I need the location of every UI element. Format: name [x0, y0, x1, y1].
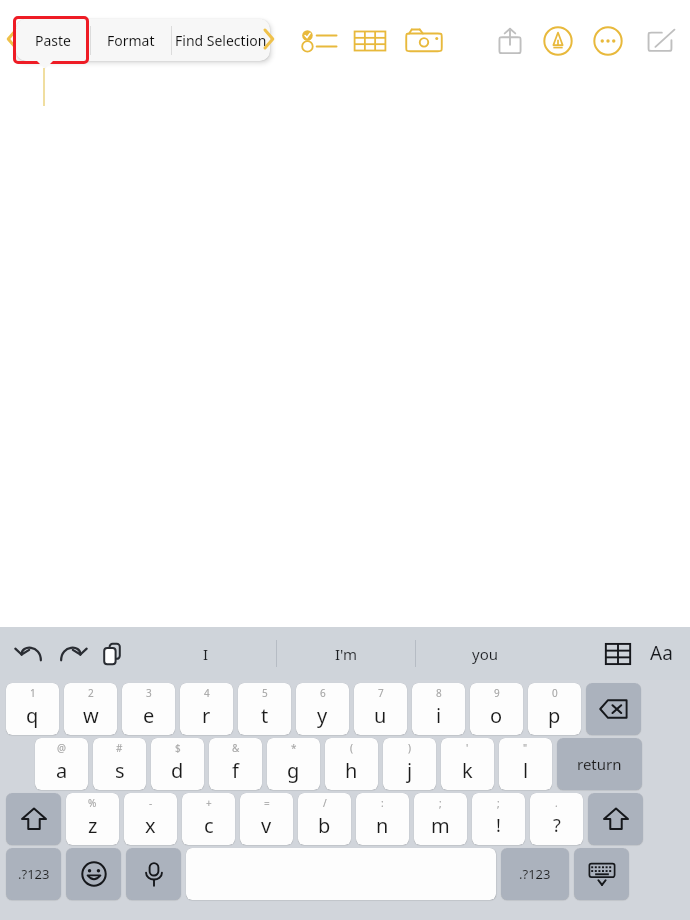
staticText: ;: [497, 796, 500, 810]
staticText: d: [171, 757, 184, 784]
staticText: (: [350, 741, 353, 755]
button[interactable]: ): [383, 738, 436, 790]
button[interactable]: Redo: [56, 640, 86, 668]
button[interactable]: .?123: [501, 848, 569, 900]
button[interactable]: return: [557, 738, 642, 790]
button[interactable]: you: [416, 635, 554, 673]
button[interactable]: 2: [64, 683, 117, 735]
staticText: v: [261, 812, 272, 839]
button[interactable]: Paste: [16, 19, 90, 61]
staticText: o: [490, 702, 503, 729]
button[interactable]: 1: [6, 683, 59, 735]
button[interactable]: 9: [470, 683, 523, 735]
button[interactable]: @: [35, 738, 88, 790]
button[interactable]: /: [298, 793, 351, 845]
staticText: /: [323, 796, 327, 810]
staticText: l: [523, 757, 529, 784]
staticText: ;: [439, 796, 442, 810]
button[interactable]: Shift: [6, 793, 61, 845]
button[interactable]: *: [267, 738, 320, 790]
button[interactable]: Hide keyboard: [574, 848, 629, 900]
staticText: *: [291, 741, 297, 755]
button[interactable]: Format: [644, 637, 678, 669]
staticText: Format: [107, 31, 155, 50]
button[interactable]: Undo: [16, 640, 46, 668]
staticText: j: [407, 757, 413, 784]
button[interactable]: -: [124, 793, 177, 845]
button[interactable]: 4: [180, 683, 233, 735]
button[interactable]: Format: [91, 19, 171, 61]
staticText: .?123: [18, 865, 50, 883]
staticText: 7: [378, 686, 384, 700]
button[interactable]: 5: [238, 683, 291, 735]
staticText: 1: [30, 686, 36, 700]
button[interactable]: Camera: [400, 24, 448, 58]
button[interactable]: ": [499, 738, 552, 790]
button[interactable]: I: [136, 635, 275, 673]
button[interactable]: +: [182, 793, 235, 845]
button[interactable]: Share: [488, 22, 532, 60]
staticText: 3: [146, 686, 152, 700]
button[interactable]: #: [93, 738, 146, 790]
button[interactable]: ': [441, 738, 494, 790]
button[interactable]: Table: [602, 640, 634, 668]
staticText: :: [381, 796, 384, 810]
staticText: &: [232, 741, 240, 755]
staticText: 0: [552, 686, 558, 700]
staticText: z: [88, 812, 98, 839]
staticText: @: [57, 741, 66, 755]
button[interactable]: 8: [412, 683, 465, 735]
staticText: c: [204, 812, 214, 839]
button[interactable]: 7: [354, 683, 407, 735]
button[interactable]: ;: [414, 793, 467, 845]
button[interactable]: Shift: [588, 793, 643, 845]
button[interactable]: Table: [348, 24, 392, 58]
button[interactable]: Checklist: [296, 24, 340, 58]
staticText: x: [145, 812, 156, 839]
staticText: 8: [436, 686, 442, 700]
button[interactable]: 0: [528, 683, 581, 735]
staticText: I: [203, 644, 209, 664]
staticText: w: [83, 702, 99, 729]
button[interactable]: Dictation: [126, 848, 181, 900]
staticText: g: [287, 757, 300, 784]
staticText: ): [408, 741, 411, 755]
staticText: f: [232, 757, 239, 784]
button[interactable]: Emoji: [66, 848, 121, 900]
staticText: i: [436, 702, 442, 729]
button[interactable]: .?123: [6, 848, 61, 900]
button[interactable]: $: [151, 738, 204, 790]
button[interactable]: Find Selection: [172, 19, 270, 61]
staticText: ': [466, 741, 469, 755]
staticText: Find Selection: [175, 31, 267, 50]
staticText: #: [116, 741, 123, 755]
button[interactable]: :: [356, 793, 409, 845]
staticText: 6: [320, 686, 326, 700]
staticText: return: [577, 754, 622, 774]
button[interactable]: &: [209, 738, 262, 790]
button[interactable]: Paste: [97, 639, 127, 669]
button[interactable]: ;: [472, 793, 525, 845]
staticText: 4: [204, 686, 210, 700]
button[interactable]: Markup: [536, 22, 580, 60]
button[interactable]: Backspace: [586, 683, 641, 735]
staticText: q: [26, 702, 39, 729]
staticText: e: [143, 702, 155, 729]
staticText: !: [496, 813, 501, 838]
button[interactable]: 6: [296, 683, 349, 735]
staticText: .: [555, 796, 558, 810]
button[interactable]: New Note: [638, 22, 682, 60]
button[interactable]: .: [530, 793, 583, 845]
staticText: you: [472, 644, 498, 664]
button[interactable]: I'm: [277, 635, 415, 673]
button[interactable]: (: [325, 738, 378, 790]
button[interactable]: 3: [122, 683, 175, 735]
button[interactable]: =: [240, 793, 293, 845]
staticText: -: [149, 796, 153, 810]
staticText: u: [374, 702, 387, 729]
button[interactable]: More: [586, 22, 630, 60]
staticText: m: [431, 812, 450, 839]
button[interactable]: %: [66, 793, 119, 845]
staticText: 9: [494, 686, 500, 700]
